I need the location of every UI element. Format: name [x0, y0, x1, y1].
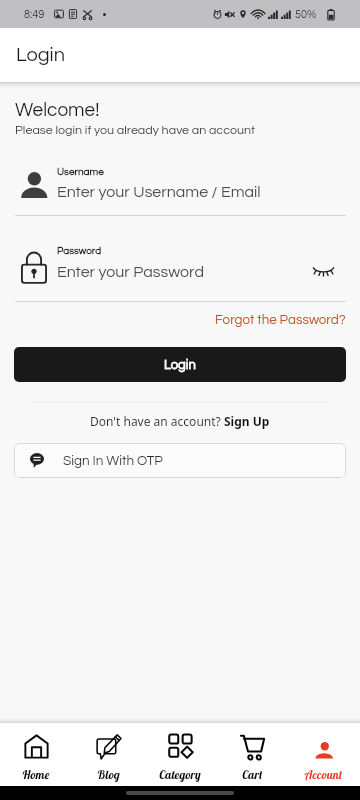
staticText: Login: [16, 45, 66, 66]
staticText: Forgot the Password?: [215, 313, 346, 327]
staticText: Account: [305, 767, 343, 782]
staticText: Please login if you already have an acco…: [15, 124, 256, 137]
staticText: Username: [57, 167, 104, 177]
staticText: Enter your Username / Email: [57, 184, 261, 200]
staticText: 50%: [295, 9, 317, 20]
staticText: Sign In With OTP: [63, 454, 163, 468]
button[interactable]: Sign Up: [224, 413, 270, 429]
button[interactable]: Home: [0, 723, 72, 786]
button[interactable]: Account: [288, 723, 360, 786]
staticText: Cart: [242, 767, 263, 782]
button[interactable]: Sign In With OTP: [14, 443, 346, 478]
button[interactable]: Login: [14, 347, 346, 382]
staticText: Password: [57, 246, 102, 256]
staticText: Enter your Password: [57, 264, 204, 280]
button[interactable]: Cart: [216, 723, 288, 786]
staticText: Login: [164, 358, 196, 371]
button[interactable]: Forgot the Password?: [207, 310, 359, 330]
staticText: Blog: [97, 767, 120, 782]
staticText: 8:49: [24, 9, 45, 20]
button[interactable]: Show password: [307, 248, 339, 280]
staticText: Don't have an account?: [90, 413, 224, 429]
staticText: Category: [159, 767, 201, 782]
staticText: Welcome!: [15, 100, 100, 120]
staticText: Home: [22, 767, 50, 782]
button[interactable]: Category: [144, 723, 216, 786]
button[interactable]: Blog: [72, 723, 144, 786]
